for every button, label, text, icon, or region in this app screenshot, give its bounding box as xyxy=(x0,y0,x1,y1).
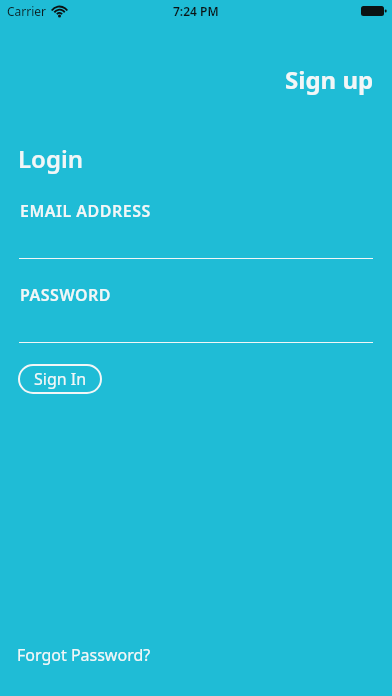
staticText: EMAIL ADDRESS xyxy=(20,200,151,222)
button[interactable]: Sign In xyxy=(18,364,102,394)
staticText: Login xyxy=(18,142,84,175)
staticText: PASSWORD xyxy=(20,284,112,306)
staticText: Forgot Password? xyxy=(17,644,151,666)
staticText: Carrier xyxy=(7,3,47,19)
button[interactable]: Forgot Password? xyxy=(17,644,151,666)
staticText: 7:24 PM xyxy=(173,3,219,19)
staticText: Sign up xyxy=(285,63,374,96)
staticText: Sign In xyxy=(34,368,87,390)
button[interactable]: Sign up xyxy=(285,63,374,96)
